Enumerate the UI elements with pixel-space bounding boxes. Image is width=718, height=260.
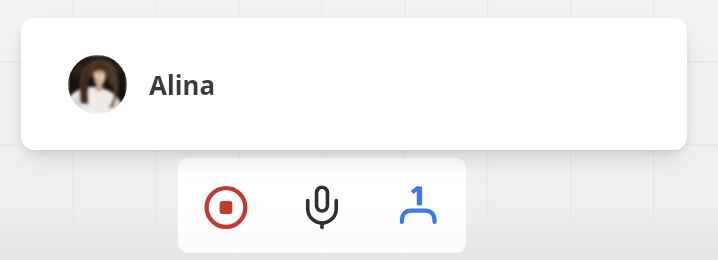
button[interactable]: Stop recording xyxy=(178,158,274,253)
button[interactable]: Participants xyxy=(370,158,466,253)
button[interactable]: Microphone xyxy=(274,158,370,253)
button[interactable]: Alina xyxy=(21,18,687,150)
staticText: Alina xyxy=(149,67,215,102)
